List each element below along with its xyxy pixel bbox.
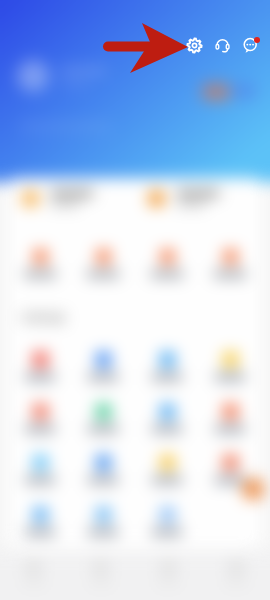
button[interactable] xyxy=(16,249,64,278)
button[interactable] xyxy=(16,455,64,484)
button[interactable] xyxy=(206,249,254,278)
button[interactable] xyxy=(143,249,191,278)
button[interactable]: Settings xyxy=(184,35,205,56)
staticText: 常用功能 xyxy=(21,311,65,325)
button[interactable] xyxy=(16,404,64,433)
button[interactable] xyxy=(143,352,191,381)
button[interactable] xyxy=(79,404,127,433)
button[interactable] xyxy=(79,249,127,278)
button[interactable]: Customer support xyxy=(212,35,233,56)
button[interactable] xyxy=(22,184,122,212)
button[interactable]: Messages xyxy=(240,35,261,56)
button[interactable] xyxy=(148,184,248,212)
button[interactable] xyxy=(206,352,254,381)
button[interactable] xyxy=(206,455,254,484)
button[interactable] xyxy=(79,507,127,536)
button[interactable] xyxy=(206,404,254,433)
button[interactable] xyxy=(143,404,191,433)
button[interactable] xyxy=(79,352,127,381)
button[interactable] xyxy=(143,455,191,484)
button[interactable] xyxy=(16,352,64,381)
button[interactable] xyxy=(143,507,191,536)
button[interactable]: Assistant xyxy=(242,478,264,500)
button[interactable] xyxy=(79,455,127,484)
button[interactable] xyxy=(16,507,64,536)
